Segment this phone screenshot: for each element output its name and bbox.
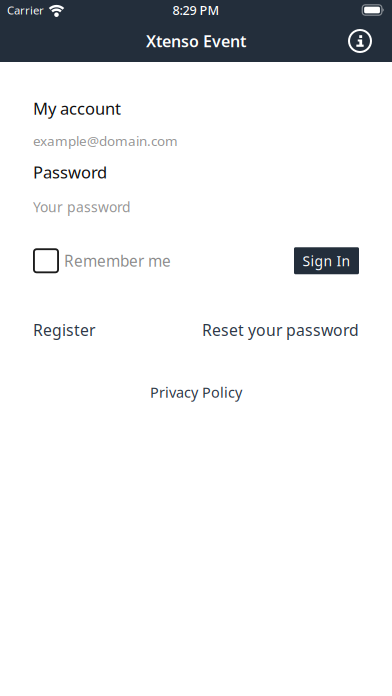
staticText: Privacy Policy — [150, 382, 242, 402]
staticText: Xtenso Event — [146, 30, 246, 52]
staticText: Register — [33, 319, 95, 341]
staticText: example@domain.com — [33, 131, 178, 150]
staticText: Password — [33, 161, 107, 183]
staticText: Remember me — [64, 250, 171, 271]
button[interactable]: Privacy Policy — [33, 382, 359, 402]
button[interactable]: Sign In — [294, 247, 359, 274]
staticText: Sign In — [302, 251, 350, 270]
staticText: 8:29 PM — [172, 1, 219, 19]
button[interactable]: Remember me — [33, 248, 171, 273]
button[interactable]: Register — [33, 319, 95, 341]
staticText: Your password — [33, 197, 131, 216]
button[interactable]: Reset your password — [202, 319, 359, 341]
staticText: My account — [33, 97, 121, 119]
staticText: Carrier — [7, 2, 44, 18]
button[interactable]: Info — [347, 28, 373, 54]
staticText: Reset your password — [202, 319, 359, 341]
